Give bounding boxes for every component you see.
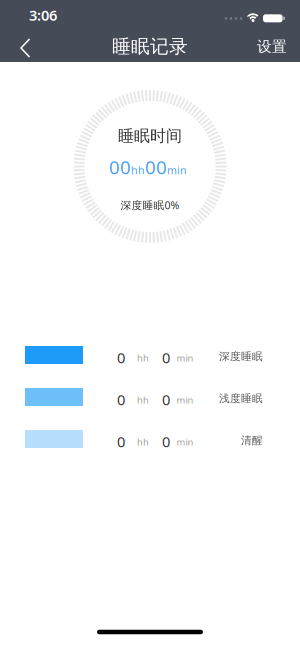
staticText: 0 <box>162 348 170 367</box>
button[interactable]: Back <box>0 31 42 62</box>
staticText: min <box>176 394 193 406</box>
staticText: 设置 <box>257 37 287 55</box>
staticText: 深度睡眠 <box>219 350 263 363</box>
staticText: hh <box>131 163 145 177</box>
staticText: 0 <box>162 432 170 451</box>
staticText: 清醒 <box>241 434 263 447</box>
staticText: min <box>176 352 193 364</box>
staticText: hh <box>137 436 149 448</box>
staticText: 浅度睡眠 <box>219 392 263 405</box>
staticText: 00 <box>109 155 131 179</box>
staticText: hh <box>137 394 149 406</box>
button[interactable]: 设置 <box>251 31 293 61</box>
staticText: 睡眠记录 <box>112 35 188 58</box>
staticText: 00 <box>145 155 167 179</box>
staticText: hh <box>137 352 149 364</box>
staticText: min <box>167 163 187 177</box>
staticText: 0 <box>117 390 125 409</box>
staticText: min <box>176 436 193 448</box>
staticText: 0 <box>162 390 170 409</box>
staticText: 3:06 <box>29 5 57 25</box>
staticText: 0 <box>117 432 125 451</box>
staticText: 睡眠时间 <box>118 126 182 146</box>
staticText: 0 <box>117 348 125 367</box>
staticText: 深度睡眠0% <box>120 198 179 212</box>
